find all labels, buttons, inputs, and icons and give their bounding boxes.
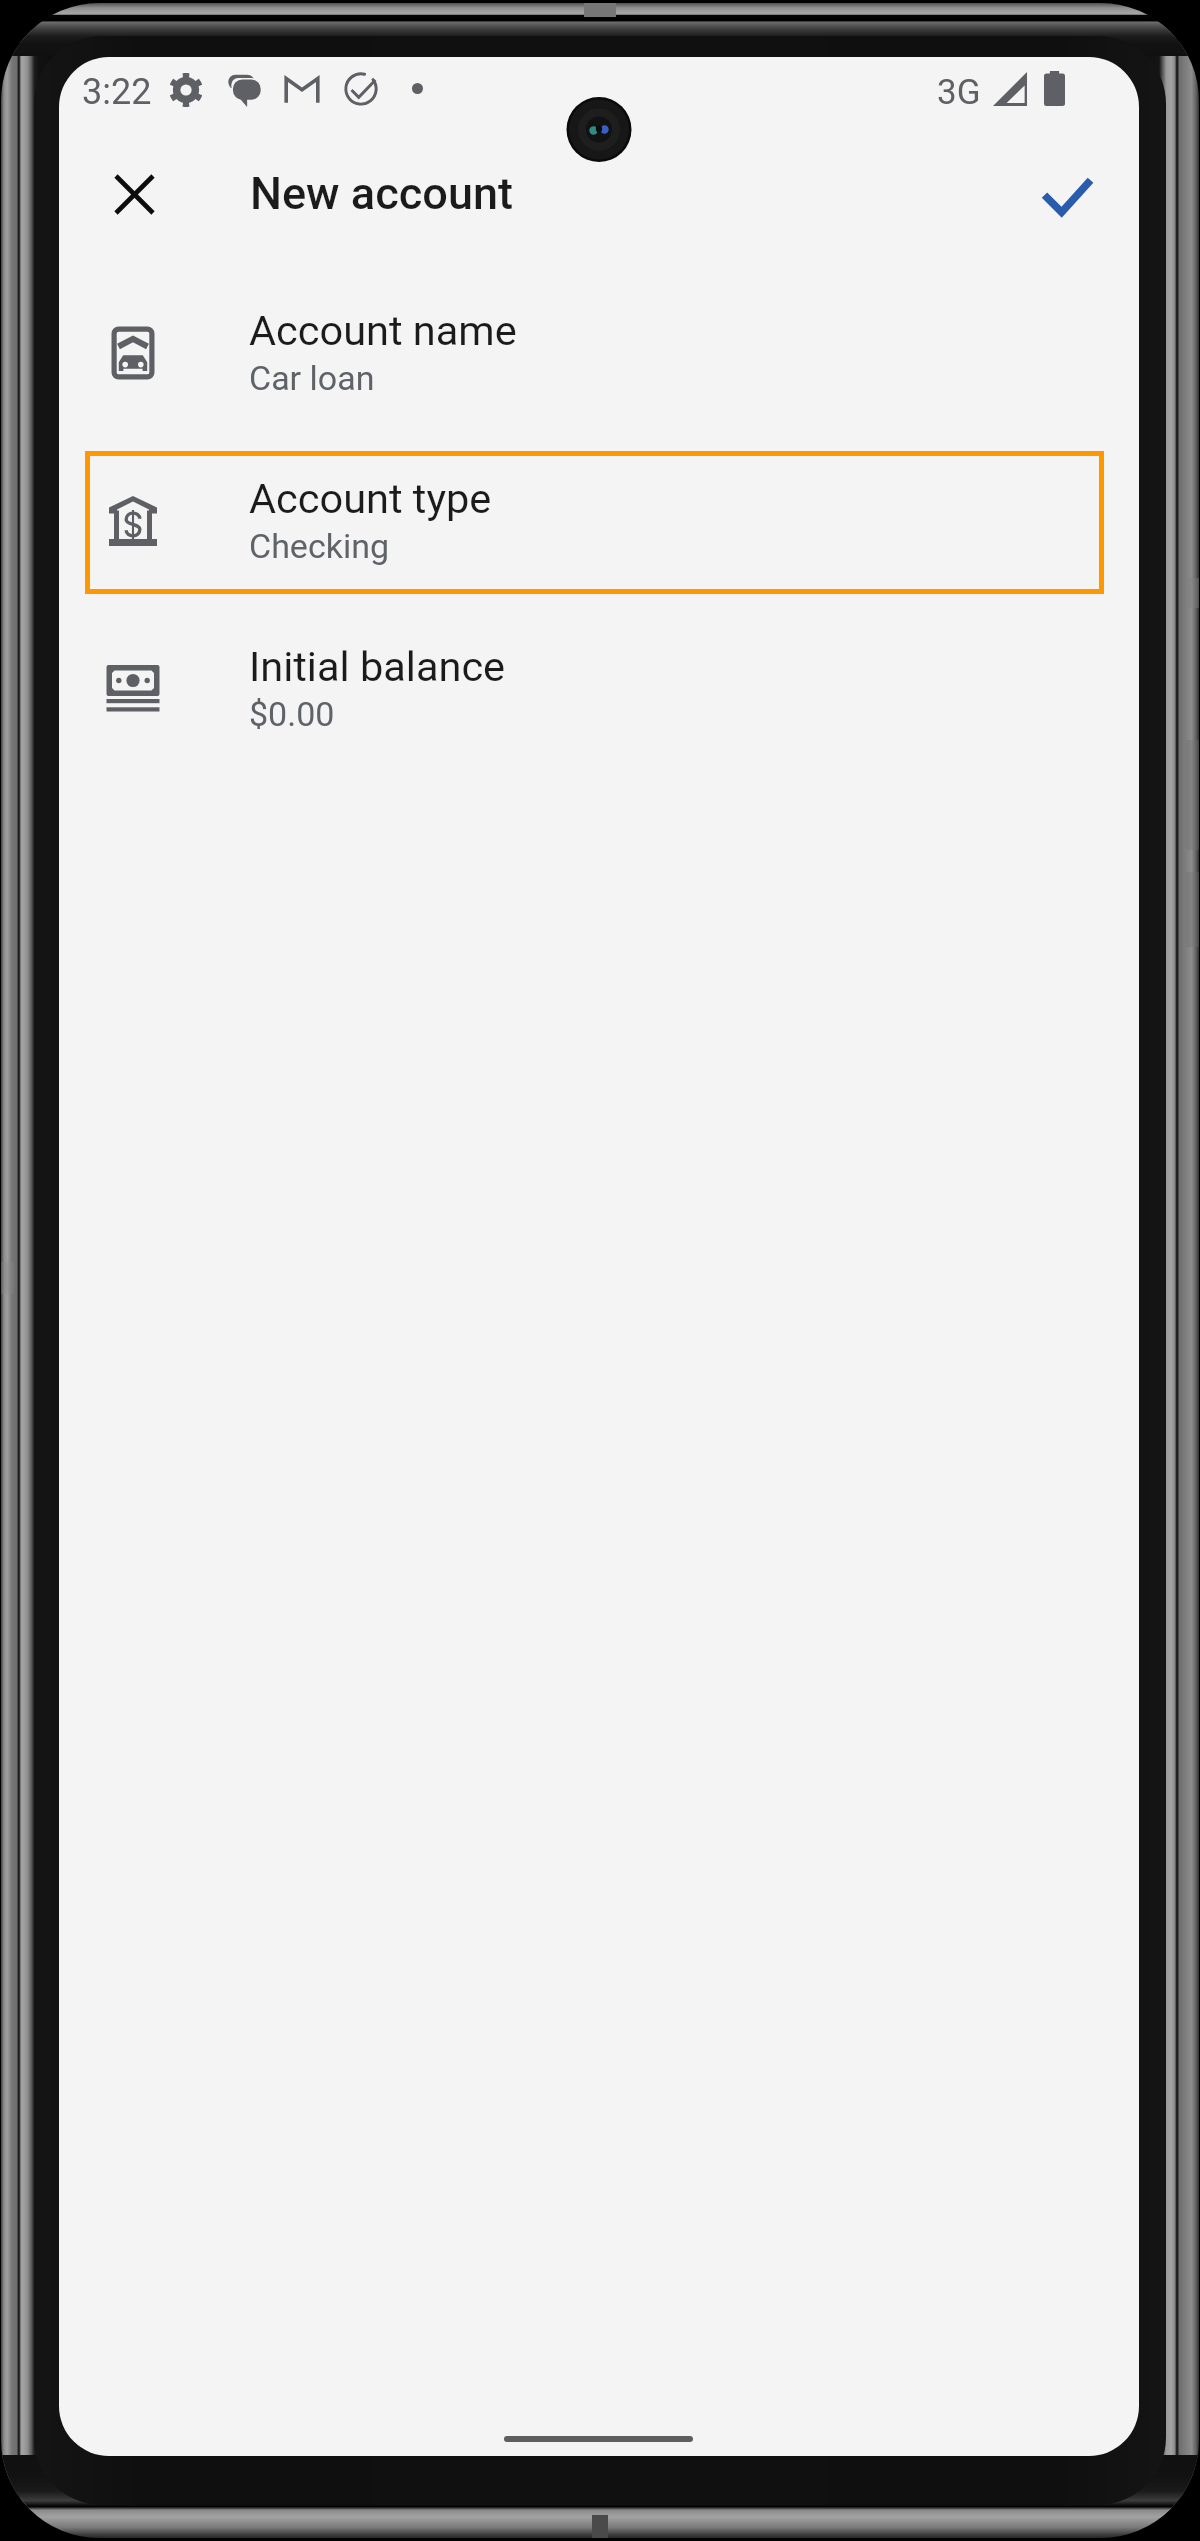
button[interactable]: Account name <box>59 263 1139 431</box>
staticText: Account type <box>249 474 492 523</box>
button[interactable]: Account type <box>59 431 1139 599</box>
staticText: Car loan <box>249 358 375 398</box>
staticText: Checking <box>249 526 390 566</box>
staticText: New account <box>250 167 513 220</box>
staticText: 3G <box>937 72 981 113</box>
staticText: 3:22 <box>82 71 152 113</box>
staticText: Account name <box>249 306 517 355</box>
button[interactable]: Close <box>86 146 182 242</box>
button[interactable]: Save <box>1019 149 1115 245</box>
staticText: Initial balance <box>249 642 506 691</box>
button[interactable]: Initial balance <box>59 599 1139 767</box>
staticText: $0.00 <box>249 694 335 734</box>
